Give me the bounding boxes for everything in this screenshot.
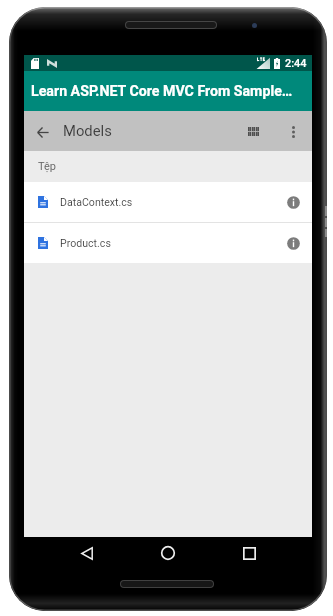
staticText: Models [63, 122, 112, 139]
button[interactable]: Recent apps [237, 541, 261, 565]
staticText: Learn ASP.NET Core MVC From Sample… [31, 83, 293, 100]
button[interactable]: Grid view [238, 111, 268, 151]
staticText: 2:44 [285, 57, 307, 70]
button[interactable]: Back [75, 541, 99, 565]
staticText: DataContext.cs [60, 196, 133, 208]
button[interactable]: File info [278, 182, 308, 222]
button[interactable]: File info [278, 223, 308, 263]
button[interactable]: Product.cs [24, 223, 312, 263]
button[interactable]: Navigate up [29, 111, 57, 151]
button[interactable]: Home [156, 541, 180, 565]
staticText: Tệp [38, 160, 57, 173]
button[interactable]: More options [278, 111, 308, 151]
staticText: Product.cs [60, 237, 111, 249]
button[interactable]: DataContext.cs [24, 182, 312, 222]
